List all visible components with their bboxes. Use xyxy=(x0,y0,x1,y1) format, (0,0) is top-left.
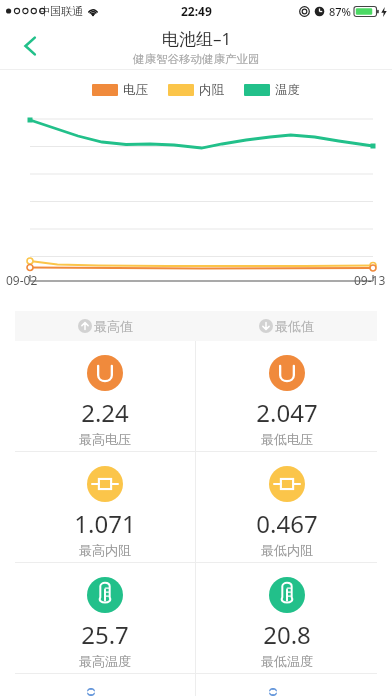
staticText: 25.7 xyxy=(81,618,129,651)
staticText: 1.071 xyxy=(74,507,136,540)
staticText: 内阻 xyxy=(199,82,224,98)
staticText: 87% xyxy=(329,4,351,19)
staticText: 电压 xyxy=(123,82,148,98)
button[interactable]: Back xyxy=(8,24,52,68)
staticText: 09-13 xyxy=(354,272,386,288)
staticText: 最低内阻 xyxy=(261,542,313,558)
staticText: 中国联通 xyxy=(39,4,83,18)
staticText: 最高内阻 xyxy=(79,542,131,558)
staticText: 2.047 xyxy=(256,396,318,429)
button[interactable]: 25.7 xyxy=(15,563,195,673)
button[interactable] xyxy=(196,674,377,696)
staticText: 最低电压 xyxy=(261,431,313,447)
button[interactable]: 1.071 xyxy=(15,452,195,562)
button[interactable]: 2.24 xyxy=(15,341,195,451)
staticText: 最高温度 xyxy=(79,653,131,669)
button[interactable]: 2.047 xyxy=(196,341,377,451)
staticText: 09-02 xyxy=(6,272,38,288)
button[interactable]: 0.467 xyxy=(196,452,377,562)
staticText: 健康智谷移动健康产业园 xyxy=(133,52,260,66)
staticText: 2.24 xyxy=(81,396,129,429)
staticText: 最高电压 xyxy=(79,431,131,447)
staticText: 20.8 xyxy=(263,618,311,651)
button[interactable] xyxy=(15,674,195,696)
staticText: 最高值 xyxy=(94,318,133,334)
staticText: 22:49 xyxy=(181,3,212,19)
staticText: 电池组–1 xyxy=(162,27,232,50)
staticText: 温度 xyxy=(275,82,300,98)
staticText: 最低温度 xyxy=(261,653,313,669)
staticText: 最低值 xyxy=(275,318,314,334)
staticText: 0.467 xyxy=(256,507,318,540)
button[interactable]: 20.8 xyxy=(196,563,377,673)
